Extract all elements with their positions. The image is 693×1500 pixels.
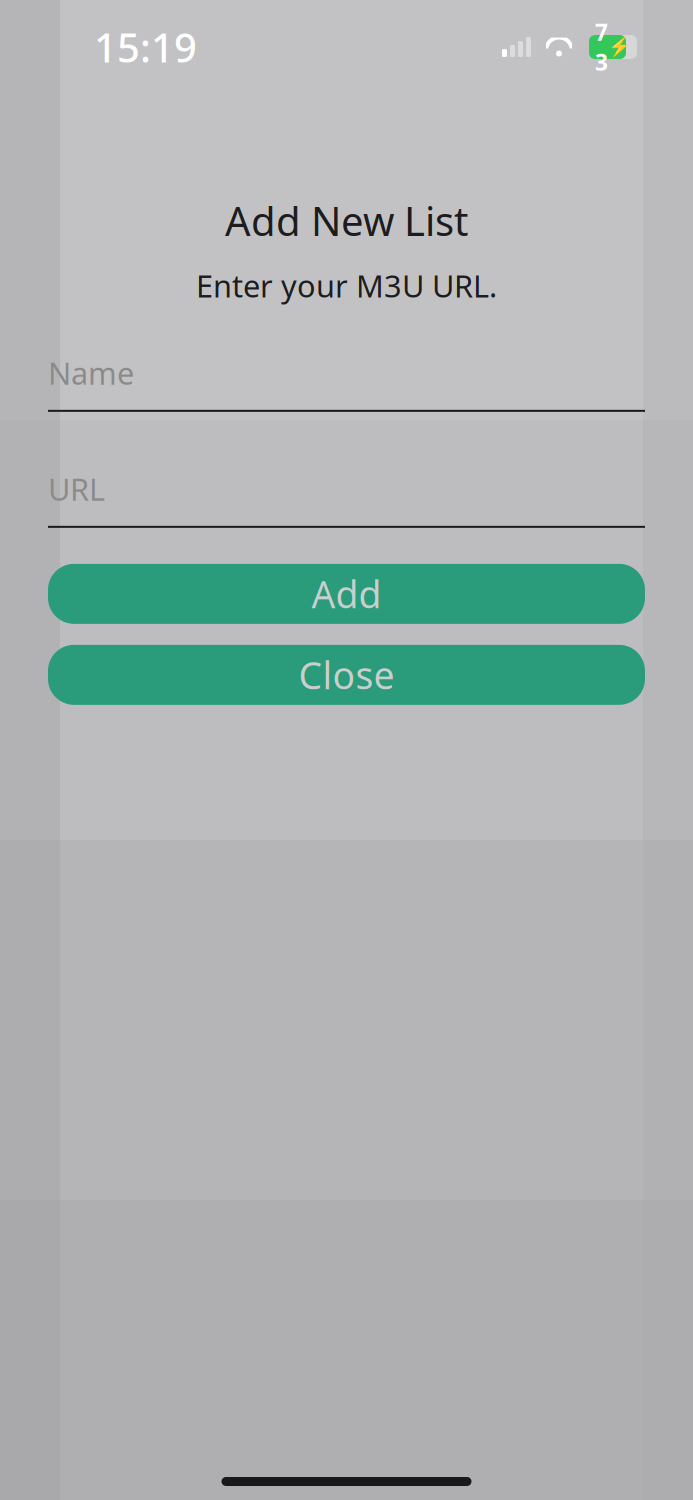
staticText: URL: [48, 468, 105, 509]
button[interactable]: Close: [48, 645, 645, 705]
staticText: Add: [311, 569, 381, 619]
staticText: 73: [595, 17, 608, 77]
staticText: Enter your M3U URL.: [196, 265, 497, 306]
staticText: Add New List: [225, 194, 468, 247]
button[interactable]: Add: [48, 564, 645, 624]
staticText: 15:19: [94, 20, 197, 73]
staticText: ⚡: [608, 36, 631, 58]
staticText: Close: [298, 650, 394, 700]
staticText: Name: [48, 352, 134, 393]
